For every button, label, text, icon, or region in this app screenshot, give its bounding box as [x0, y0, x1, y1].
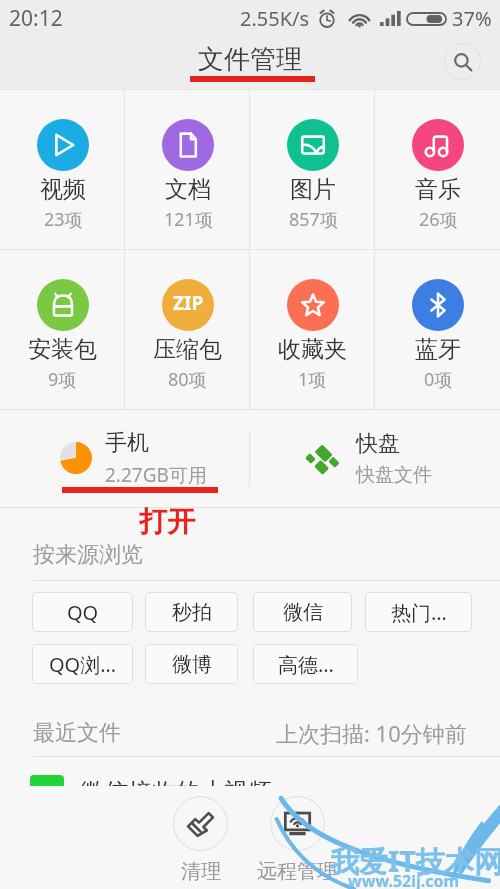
staticText: 80项: [168, 367, 207, 392]
staticText: 23项: [44, 207, 83, 232]
staticText: ZIP: [173, 290, 204, 316]
button[interactable]: 手机: [0, 410, 249, 507]
staticText: 微博: [172, 652, 212, 677]
staticText: 2.27GB可用: [105, 462, 207, 488]
staticText: 文件管理: [198, 43, 302, 76]
button[interactable]: 视频: [0, 90, 125, 249]
staticText: QQ: [67, 599, 99, 626]
staticText: 清理: [181, 859, 221, 884]
staticText: 0项: [424, 367, 453, 392]
staticText: 热门…: [391, 599, 447, 626]
staticText: 远程管理: [257, 859, 337, 884]
button[interactable]: QQ浏…: [32, 644, 133, 684]
staticText: 手机: [105, 429, 149, 457]
button[interactable]: 文档: [125, 90, 250, 249]
button[interactable]: 远程管理: [249, 796, 345, 884]
staticText: 37%: [452, 5, 492, 32]
staticText: 2.55K/s: [240, 5, 310, 32]
staticText: 快盘: [356, 430, 400, 458]
button[interactable]: 秒拍: [145, 592, 238, 632]
staticText: 秒拍: [172, 600, 212, 625]
staticText: 音乐: [415, 175, 461, 204]
staticText: 我爱IT技术网: [330, 841, 500, 881]
button[interactable]: 图片: [250, 90, 375, 249]
staticText: 微信接收的小视频: [80, 777, 272, 807]
staticText: 微信: [283, 600, 323, 625]
staticText: 1项: [298, 367, 327, 392]
staticText: 文档: [165, 175, 211, 204]
button[interactable]: ZIP: [125, 250, 250, 409]
staticText: 上次扫描: 10分钟前: [276, 718, 467, 748]
staticText: 快盘文件: [356, 463, 432, 487]
staticText: 收藏夹: [278, 335, 347, 364]
button[interactable]: 蓝牙: [375, 250, 500, 409]
staticText: 按来源浏览: [33, 541, 143, 569]
button[interactable]: 收藏夹: [250, 250, 375, 409]
staticText: 20:12: [9, 4, 63, 33]
button[interactable]: 高德…: [253, 644, 358, 684]
button[interactable]: 热门…: [365, 592, 472, 632]
staticText: 26项: [419, 207, 458, 232]
button[interactable]: 安装包: [0, 250, 125, 409]
button[interactable]: Search: [444, 43, 481, 80]
button[interactable]: 清理: [165, 796, 236, 884]
button[interactable]: 音乐: [375, 90, 500, 249]
button[interactable]: 微博: [145, 644, 238, 684]
staticText: 121项: [164, 207, 213, 232]
staticText: 857项: [289, 207, 338, 232]
staticText: 压缩包: [153, 335, 222, 364]
staticText: 安装包: [28, 335, 97, 364]
staticText: 高德…: [278, 651, 334, 678]
staticText: QQ浏…: [49, 651, 117, 678]
button[interactable]: 微信: [253, 592, 352, 632]
button[interactable]: 快盘: [250, 410, 500, 507]
button[interactable]: 微信接收的小视频: [0, 757, 500, 827]
staticText: 9项: [48, 367, 77, 392]
staticText: www.52ij.com: [348, 870, 460, 889]
staticText: 最近文件: [33, 719, 121, 747]
staticText: 打开: [139, 504, 195, 539]
staticText: 图片: [290, 175, 336, 204]
staticText: 视频: [40, 175, 86, 204]
staticText: 蓝牙: [415, 335, 461, 364]
button[interactable]: QQ: [32, 592, 133, 632]
